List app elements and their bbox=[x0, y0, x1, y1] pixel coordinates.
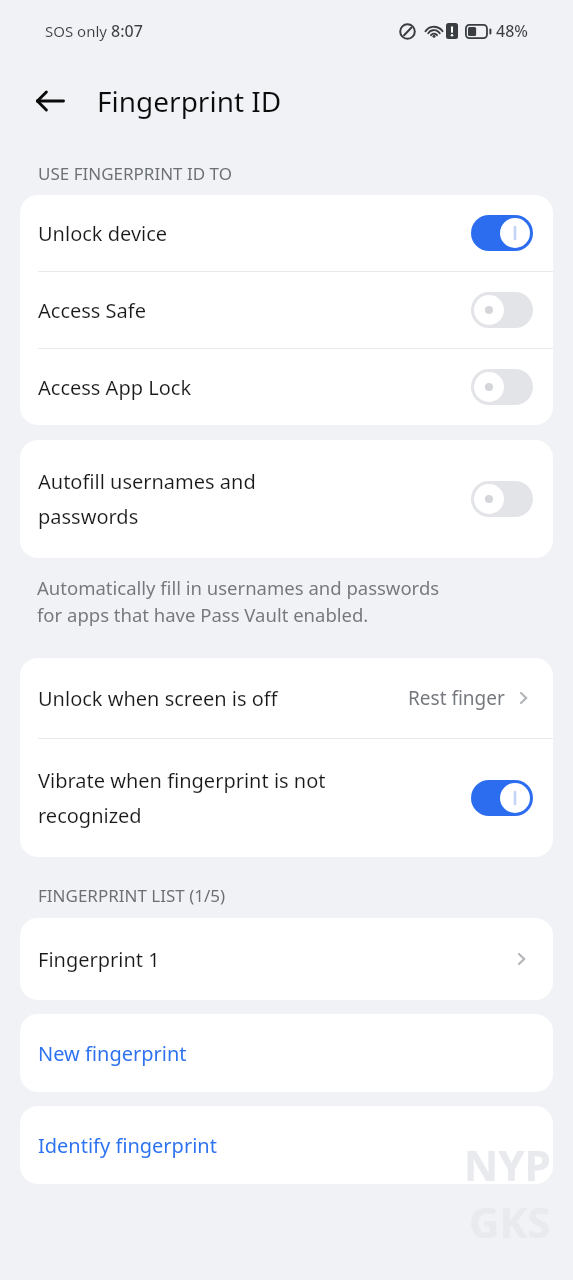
staticText: Unlock when screen is off bbox=[38, 685, 408, 712]
staticText: 8:07 bbox=[111, 20, 143, 42]
staticText: Vibrate when fingerprint is not recogniz… bbox=[38, 767, 461, 829]
staticText: 48% bbox=[496, 20, 528, 42]
button[interactable]: Access Safe bbox=[20, 272, 553, 348]
staticText: Rest finger bbox=[408, 685, 505, 711]
button[interactable]: Off bbox=[471, 481, 533, 517]
staticText: Automatically fill in usernames and pass… bbox=[37, 575, 440, 628]
button[interactable]: Autofill usernames and passwords bbox=[20, 440, 553, 558]
button[interactable]: Off bbox=[471, 292, 533, 328]
button[interactable]: Access App Lock bbox=[20, 349, 553, 425]
button[interactable]: Unlock device bbox=[20, 195, 553, 271]
button[interactable]: On bbox=[471, 215, 533, 251]
button[interactable]: Vibrate when fingerprint is not recogniz… bbox=[20, 739, 553, 857]
button[interactable]: Fingerprint 1 bbox=[20, 918, 553, 1000]
staticText: Identify fingerprint bbox=[38, 1132, 217, 1159]
staticText: Fingerprint 1 bbox=[38, 946, 511, 973]
button[interactable]: Unlock when screen is off bbox=[20, 658, 553, 738]
staticText: Access Safe bbox=[38, 297, 461, 324]
staticText: Access App Lock bbox=[38, 374, 461, 401]
button[interactable]: On bbox=[471, 780, 533, 816]
staticText: Fingerprint ID bbox=[97, 82, 282, 120]
button[interactable]: Back bbox=[24, 75, 76, 127]
button[interactable]: Identify fingerprint bbox=[20, 1106, 553, 1184]
staticText: New fingerprint bbox=[38, 1040, 187, 1067]
staticText: FINGERPRINT LIST (1/5) bbox=[38, 884, 226, 907]
staticText: Unlock device bbox=[38, 220, 461, 247]
staticText: GKS bbox=[469, 1193, 551, 1250]
button[interactable]: New fingerprint bbox=[20, 1014, 553, 1092]
staticText: Autofill usernames and passwords bbox=[38, 468, 461, 530]
staticText: NYP bbox=[464, 1136, 551, 1193]
staticText: USE FINGERPRINT ID TO bbox=[38, 162, 232, 185]
staticText: SOS only bbox=[45, 21, 111, 41]
button[interactable]: Off bbox=[471, 369, 533, 405]
